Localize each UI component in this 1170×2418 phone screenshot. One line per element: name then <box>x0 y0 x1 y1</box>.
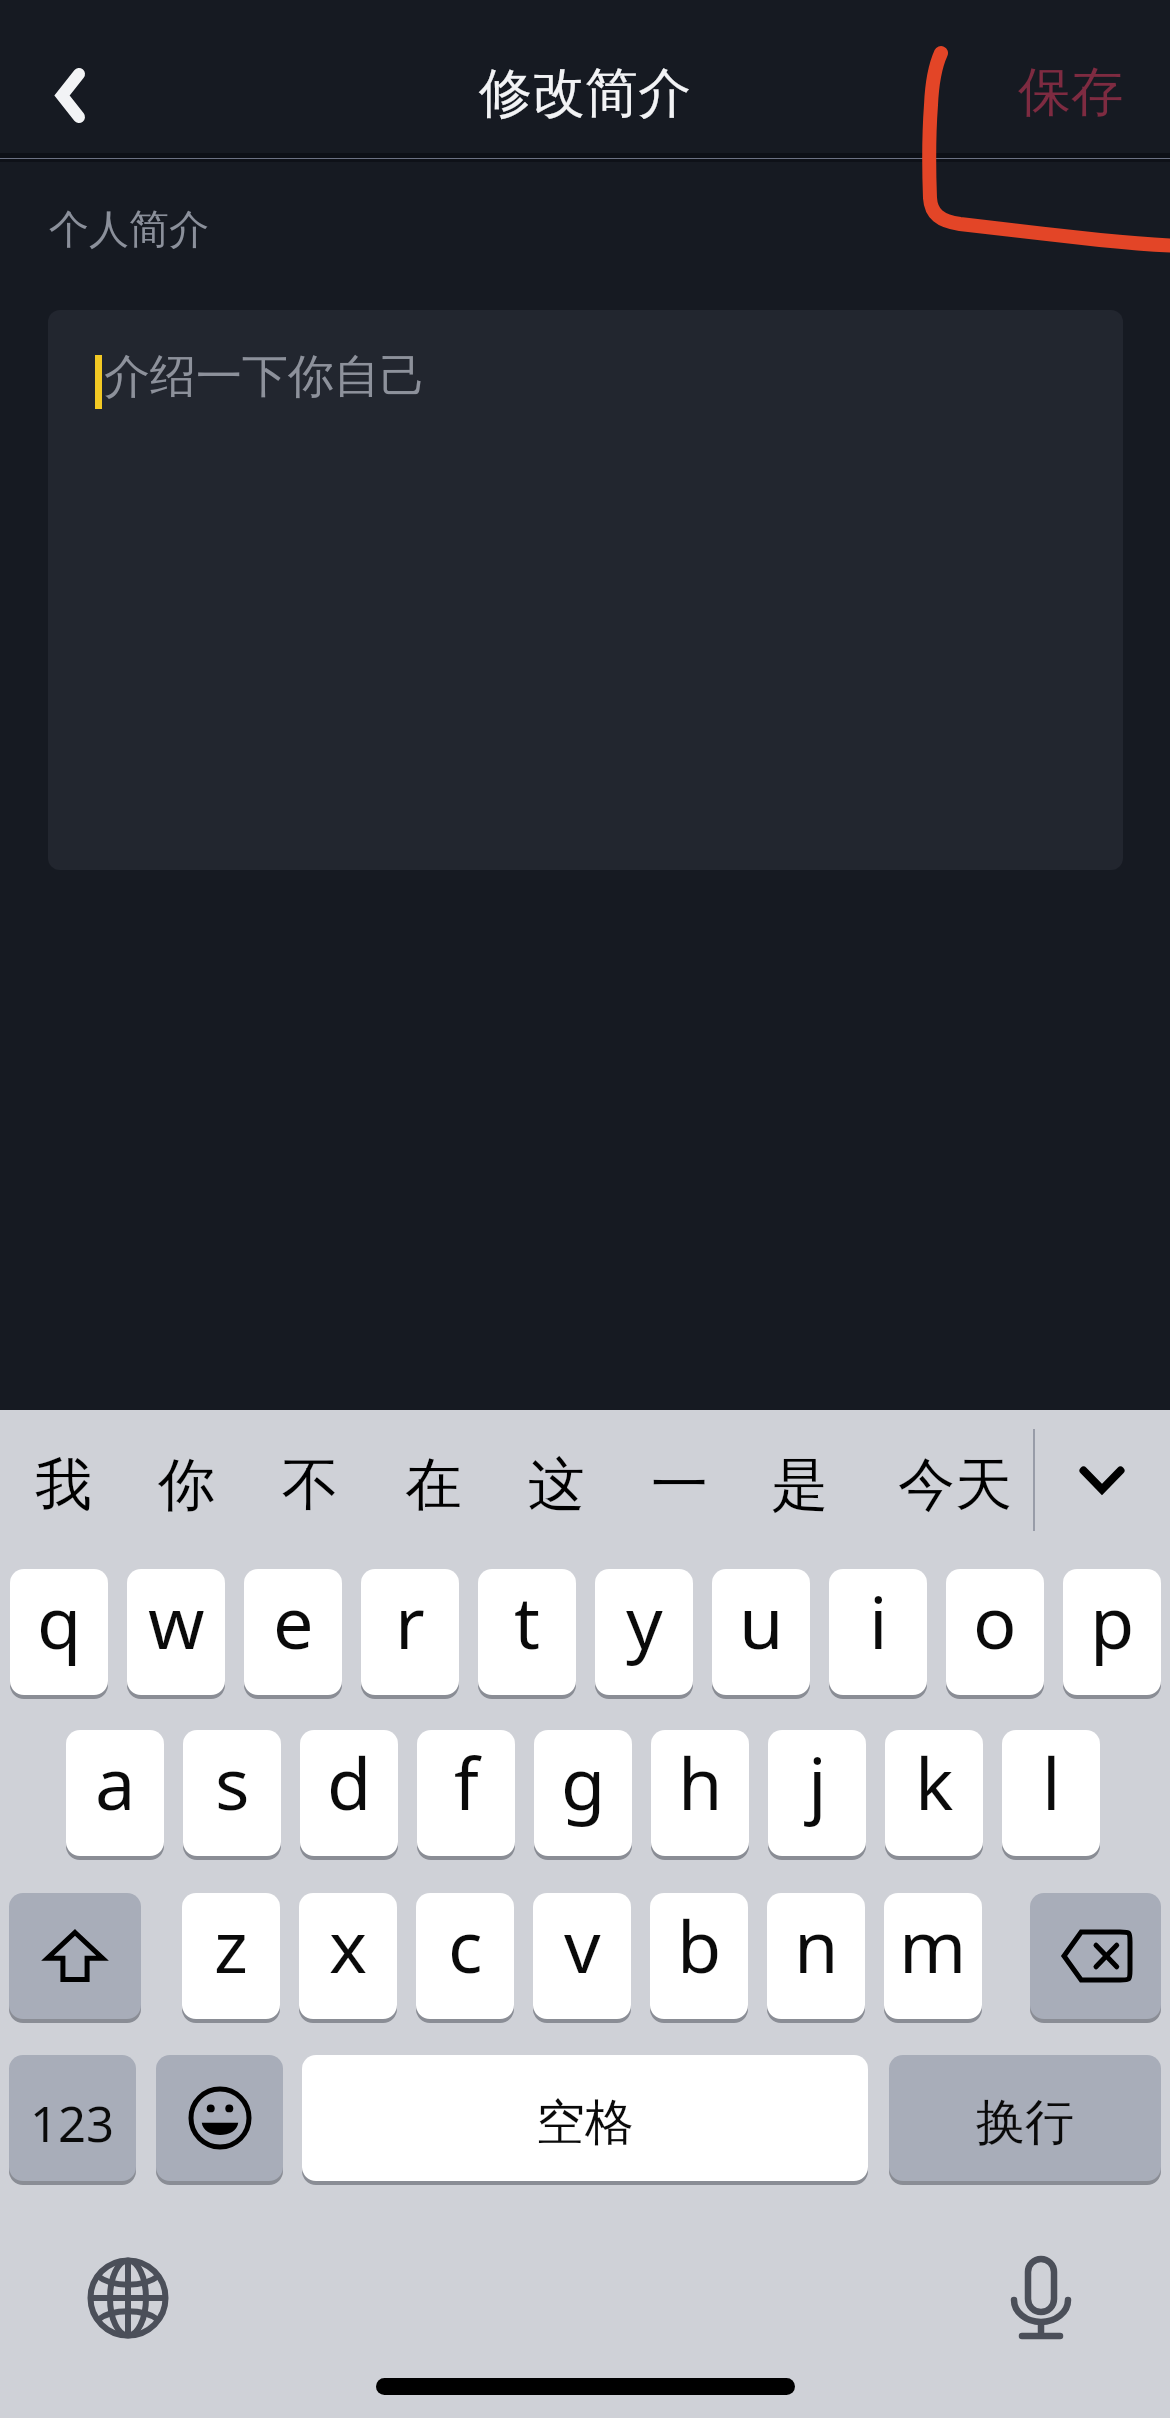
button[interactable]: 是 <box>757 1420 841 1550</box>
button[interactable]: u <box>712 1569 810 1695</box>
button[interactable]: Hide keyboard <box>1042 1417 1162 1543</box>
button[interactable]: x <box>299 1893 397 2019</box>
button[interactable]: 介绍一下你自己 <box>48 310 1123 870</box>
button[interactable]: 一 <box>637 1420 721 1550</box>
button[interactable]: e <box>244 1569 342 1695</box>
button[interactable]: w <box>127 1569 225 1695</box>
button[interactable]: l <box>1002 1730 1100 1856</box>
staticText: c <box>448 1896 483 1994</box>
button[interactable]: r <box>361 1569 459 1695</box>
staticText: 保存 <box>1018 59 1124 126</box>
button[interactable]: k <box>885 1730 983 1856</box>
staticText: i <box>869 1572 888 1670</box>
button[interactable]: s <box>183 1730 281 1856</box>
staticText: d <box>327 1733 372 1831</box>
staticText: j <box>808 1733 827 1831</box>
staticText: 个人简介 <box>49 204 209 254</box>
staticText: w <box>148 1572 205 1670</box>
button[interactable]: 保存 <box>981 22 1161 162</box>
staticText: l <box>1042 1733 1061 1831</box>
staticText: 我 <box>35 1449 92 1521</box>
button[interactable]: Backspace <box>1030 1893 1161 2019</box>
staticText: e <box>273 1572 314 1670</box>
button[interactable]: Change keyboard language <box>70 2240 186 2356</box>
button[interactable]: Voice input <box>983 2240 1099 2356</box>
staticText: x <box>329 1896 368 1994</box>
button[interactable]: Shift <box>9 1893 141 2019</box>
button[interactable]: j <box>768 1730 866 1856</box>
button[interactable]: h <box>651 1730 749 1856</box>
button[interactable]: Back <box>0 25 140 165</box>
button[interactable]: t <box>478 1569 576 1695</box>
staticText: 一 <box>651 1449 708 1521</box>
button[interactable]: 不 <box>268 1420 352 1550</box>
staticText: r <box>395 1572 425 1670</box>
staticText: 修改简介 <box>479 60 691 127</box>
button[interactable]: 空格 <box>302 2055 868 2181</box>
button[interactable]: Emoji <box>156 2055 283 2181</box>
staticText: 不 <box>282 1449 339 1521</box>
button[interactable]: p <box>1063 1569 1161 1695</box>
button[interactable]: 我 <box>21 1420 105 1550</box>
staticText: v <box>564 1896 601 1994</box>
staticText: g <box>561 1733 606 1831</box>
staticText: 你 <box>158 1449 215 1521</box>
button[interactable]: z <box>182 1893 280 2019</box>
staticText: 这 <box>528 1449 585 1521</box>
staticText: 是 <box>771 1449 828 1521</box>
button[interactable]: b <box>650 1893 748 2019</box>
button[interactable]: o <box>946 1569 1044 1695</box>
button[interactable]: 在 <box>391 1420 475 1550</box>
button[interactable]: d <box>300 1730 398 1856</box>
button[interactable]: v <box>533 1893 631 2019</box>
button[interactable]: q <box>10 1569 108 1695</box>
staticText: 介绍一下你自己 <box>104 348 426 406</box>
button[interactable]: n <box>767 1893 865 2019</box>
button[interactable]: y <box>595 1569 693 1695</box>
staticText: b <box>677 1896 722 1994</box>
staticText: u <box>739 1572 784 1670</box>
button[interactable]: m <box>884 1893 982 2019</box>
button[interactable]: 123 <box>9 2055 136 2181</box>
staticText: 在 <box>405 1449 462 1521</box>
staticText: t <box>514 1572 540 1670</box>
button[interactable]: c <box>416 1893 514 2019</box>
staticText: h <box>678 1733 723 1831</box>
button[interactable]: 这 <box>514 1420 598 1550</box>
staticText: a <box>95 1733 136 1831</box>
staticText: m <box>899 1896 967 1994</box>
staticText: 123 <box>30 2090 115 2157</box>
button[interactable]: 今天 <box>893 1420 1017 1550</box>
staticText: n <box>794 1896 839 1994</box>
staticText: 空格 <box>536 2092 634 2154</box>
staticText: p <box>1090 1572 1135 1670</box>
staticText: k <box>915 1733 954 1831</box>
button[interactable]: g <box>534 1730 632 1856</box>
staticText: o <box>973 1572 1017 1670</box>
button[interactable]: 换行 <box>889 2055 1161 2181</box>
button[interactable]: 你 <box>144 1420 228 1550</box>
staticText: f <box>454 1733 479 1831</box>
staticText: s <box>215 1733 250 1831</box>
button[interactable]: f <box>417 1730 515 1856</box>
staticText: y <box>626 1572 663 1670</box>
button[interactable]: i <box>829 1569 927 1695</box>
staticText: 换行 <box>976 2092 1074 2154</box>
button[interactable]: a <box>66 1730 164 1856</box>
staticText: z <box>214 1896 248 1994</box>
staticText: 今天 <box>898 1449 1012 1521</box>
staticText: q <box>37 1572 82 1670</box>
